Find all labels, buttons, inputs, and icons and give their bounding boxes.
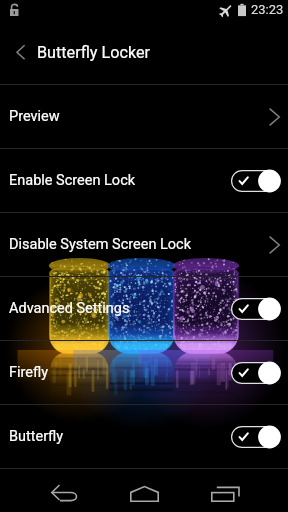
staticText: Preview [9, 108, 60, 125]
button[interactable]: Butterfly [0, 405, 288, 468]
button[interactable]: Toggle on [231, 361, 283, 385]
staticText: Butterfly [9, 428, 64, 445]
staticText: Disable System Screen Lock [9, 236, 192, 253]
button[interactable]: Enable Screen Lock [0, 149, 288, 212]
staticText: Butterfly Locker [37, 43, 151, 62]
button[interactable]: Toggle on [231, 425, 283, 449]
staticText: Enable Screen Lock [9, 172, 136, 189]
button[interactable]: Toggle on [231, 297, 283, 321]
button[interactable]: Back [0, 26, 42, 84]
button[interactable]: Preview [0, 85, 288, 148]
button[interactable]: Home [114, 469, 175, 512]
staticText: Firefly [9, 364, 49, 381]
staticText: Advanced Settings [9, 300, 130, 317]
button[interactable]: Recent apps [195, 469, 256, 512]
button[interactable]: Disable System Screen Lock [0, 213, 288, 276]
button[interactable]: Toggle on [231, 169, 283, 193]
staticText: 23:23 [251, 2, 284, 17]
button[interactable]: Back [34, 469, 95, 512]
button[interactable]: Firefly [0, 341, 288, 404]
button[interactable]: Advanced Settings [0, 277, 288, 340]
